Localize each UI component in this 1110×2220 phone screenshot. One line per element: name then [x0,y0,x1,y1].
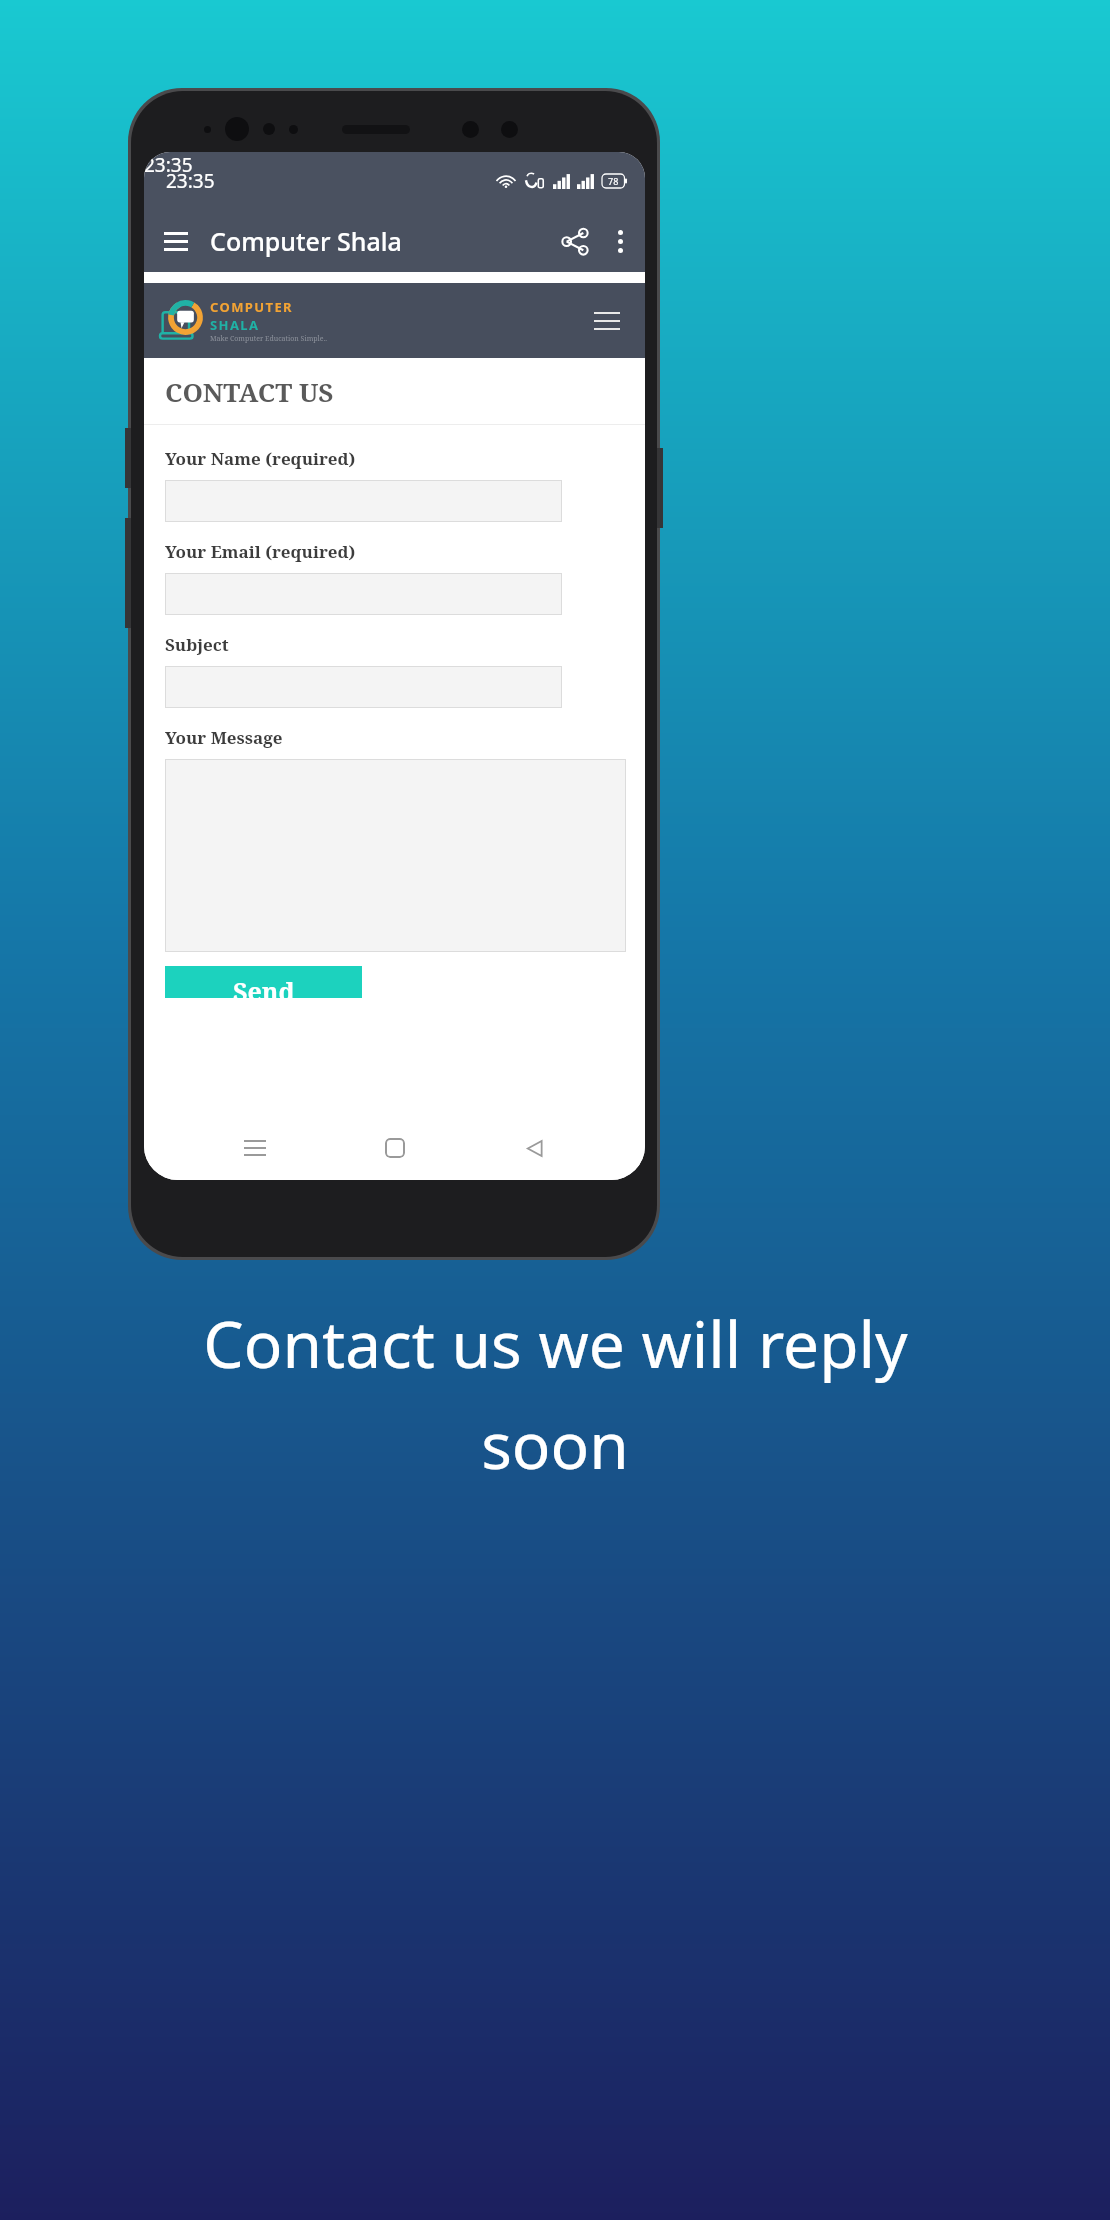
button[interactable]: COMPUTER [144,283,645,358]
staticText: soon [481,1401,629,1488]
staticText: CONTACT US [165,374,334,409]
staticText: Make Computer Education Simple.. [210,334,327,344]
staticText: Send [233,974,295,1006]
button[interactable]: Share [551,217,599,265]
button[interactable]: Send [165,966,362,998]
staticText: SHALA [210,316,260,334]
staticText: COMPUTER [210,298,294,316]
staticText: 78 [608,175,619,187]
button[interactable]: Text field [165,666,562,708]
staticText: Your Name (required) [165,447,356,470]
button[interactable]: Site menu [585,299,629,343]
button[interactable]: Back [506,1120,562,1176]
staticText: Subject [165,633,229,656]
staticText: 23:35 [166,168,215,194]
button[interactable]: Home [367,1120,423,1176]
staticText: Computer Shala [210,224,402,258]
button[interactable]: Recent apps [227,1120,283,1176]
staticText: Your Email (required) [165,540,356,563]
staticText: 23:35 [144,152,193,178]
button[interactable]: Text field [165,573,562,615]
staticText: Contact us we will reply [203,1300,908,1387]
button[interactable]: More options [599,220,641,262]
button[interactable]: Text field [165,480,562,522]
staticText: Your Message [165,726,283,749]
button[interactable]: Open navigation drawer [152,217,200,265]
